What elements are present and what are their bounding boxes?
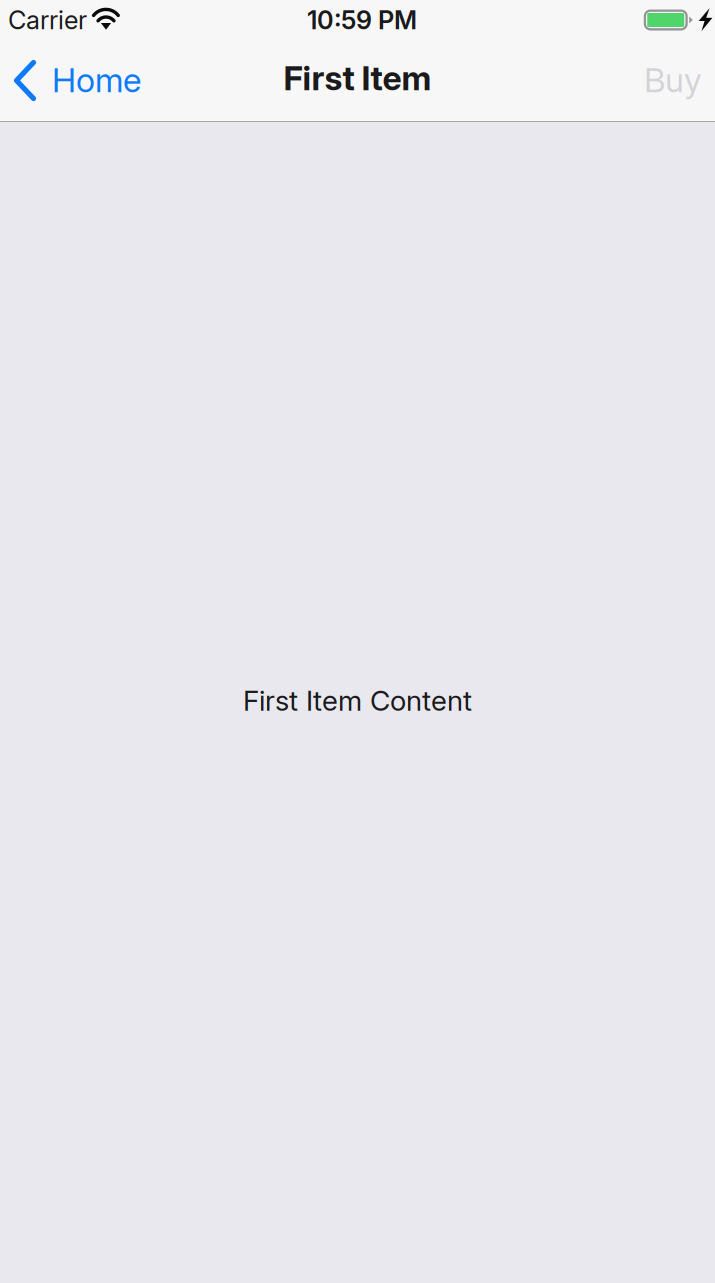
staticText: Buy (644, 60, 702, 100)
button[interactable]: Buy (631, 39, 715, 120)
staticText: Carrier (8, 5, 87, 35)
staticText: First Item (283, 58, 431, 98)
staticText: Home (52, 60, 141, 100)
button[interactable]: Back to Home (0, 39, 151, 120)
staticText: 10:59 PM (307, 5, 417, 35)
staticText: First Item Content (243, 684, 472, 717)
